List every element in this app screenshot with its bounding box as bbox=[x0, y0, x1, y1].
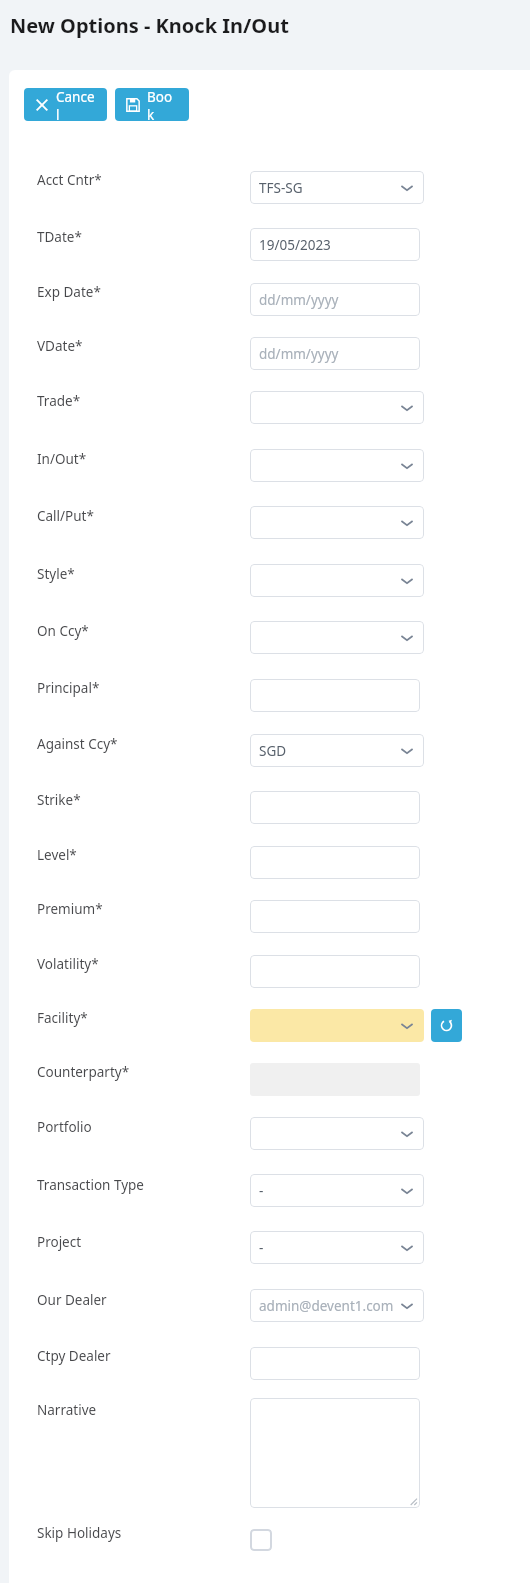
button[interactable]: - bbox=[250, 1174, 424, 1207]
staticText: Ctpy Dealer bbox=[37, 1347, 111, 1365]
staticText: Acct Cntr* bbox=[37, 171, 102, 189]
staticText: SGD bbox=[259, 742, 287, 760]
staticText: Portfolio bbox=[37, 1118, 92, 1136]
button[interactable] bbox=[250, 846, 420, 879]
staticText: On Ccy* bbox=[37, 622, 89, 640]
staticText: New Options - Knock In/Out bbox=[10, 12, 289, 39]
staticText: Project bbox=[37, 1233, 82, 1251]
staticText: - bbox=[259, 1182, 264, 1200]
button[interactable] bbox=[250, 791, 420, 824]
staticText: Level* bbox=[37, 846, 77, 864]
button[interactable] bbox=[250, 1347, 420, 1380]
button[interactable] bbox=[250, 506, 424, 539]
staticText: Skip Holidays bbox=[37, 1524, 122, 1542]
staticText: Volatility* bbox=[37, 955, 99, 973]
button[interactable]: Cancel bbox=[24, 88, 107, 121]
button[interactable] bbox=[250, 900, 420, 933]
staticText: Trade* bbox=[37, 392, 81, 410]
button[interactable]: TFS-SG bbox=[250, 171, 424, 204]
staticText: dd/mm/yyyy bbox=[259, 291, 339, 309]
staticText: Transaction Type bbox=[37, 1176, 144, 1194]
button[interactable]: - bbox=[250, 1231, 424, 1264]
staticText: Premium* bbox=[37, 900, 103, 918]
button[interactable] bbox=[250, 621, 424, 654]
button[interactable]: SGD bbox=[250, 734, 424, 767]
staticText: Call/Put* bbox=[37, 507, 94, 525]
staticText: Exp Date* bbox=[37, 283, 101, 301]
staticText: Narrative bbox=[37, 1401, 97, 1419]
staticText: TFS-SG bbox=[259, 179, 303, 197]
staticText: TDate* bbox=[37, 228, 82, 246]
staticText: Cancel bbox=[56, 88, 96, 121]
staticText: Facility* bbox=[37, 1009, 88, 1027]
staticText: Book bbox=[147, 88, 178, 121]
button[interactable] bbox=[250, 1009, 424, 1042]
button[interactable] bbox=[250, 955, 420, 988]
staticText: VDate* bbox=[37, 337, 83, 355]
staticText: admin@devent1.com bbox=[259, 1297, 394, 1315]
button[interactable]: dd/mm/yyyy bbox=[250, 337, 420, 370]
button[interactable] bbox=[250, 679, 420, 712]
button[interactable]: Skip Holidays bbox=[250, 1529, 272, 1551]
button[interactable] bbox=[250, 449, 424, 482]
button[interactable] bbox=[250, 1398, 420, 1508]
staticText: Style* bbox=[37, 565, 75, 583]
staticText: Strike* bbox=[37, 791, 81, 809]
button[interactable]: dd/mm/yyyy bbox=[250, 283, 420, 316]
staticText: Principal* bbox=[37, 679, 100, 697]
staticText: dd/mm/yyyy bbox=[259, 345, 339, 363]
button[interactable]: 19/05/2023 bbox=[250, 228, 420, 261]
button[interactable] bbox=[250, 1117, 424, 1150]
staticText: Against Ccy* bbox=[37, 735, 118, 753]
staticText: In/Out* bbox=[37, 450, 87, 468]
button[interactable] bbox=[250, 564, 424, 597]
button[interactable]: Refresh bbox=[431, 1009, 462, 1042]
button[interactable]: Book bbox=[115, 88, 189, 121]
button[interactable]: admin@devent1.com bbox=[250, 1289, 424, 1322]
button[interactable] bbox=[250, 391, 424, 424]
staticText: 19/05/2023 bbox=[259, 236, 331, 254]
staticText: - bbox=[259, 1239, 264, 1257]
staticText: Counterparty* bbox=[37, 1063, 130, 1081]
staticText: Our Dealer bbox=[37, 1291, 107, 1309]
